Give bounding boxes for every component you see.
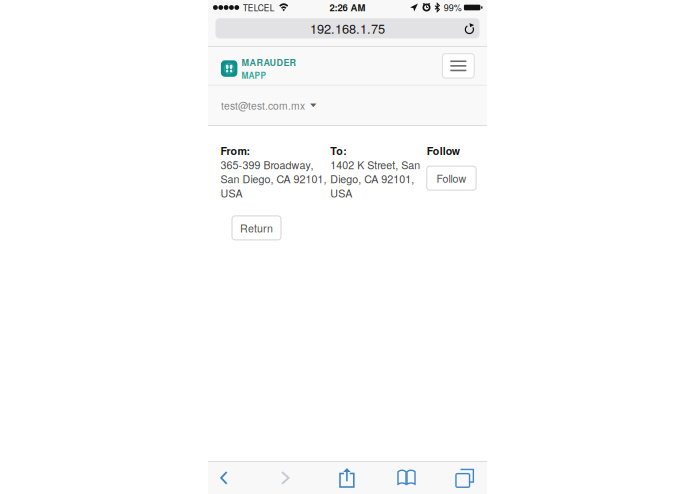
staticText: 99% <box>444 1 462 14</box>
staticText: San Diego, CA 92101, <box>220 171 326 186</box>
button[interactable]: Tabs <box>449 462 482 494</box>
staticText: 2:26 AM <box>329 1 365 14</box>
button[interactable]: Menu <box>442 54 474 78</box>
button[interactable]: Reload <box>459 18 479 38</box>
staticText: USA <box>220 185 242 200</box>
staticText: 365-399 Broadway, <box>220 157 313 172</box>
staticText: Return <box>240 220 273 236</box>
staticText: Follow <box>436 170 466 186</box>
staticText: Diego, CA 92101, <box>330 171 414 186</box>
button[interactable]: Return <box>232 216 281 240</box>
button[interactable]: Share <box>330 462 363 494</box>
staticText: Follow <box>427 143 460 158</box>
staticText: To: <box>330 143 347 158</box>
staticText: 192.168.1.75 <box>310 19 385 37</box>
button[interactable]: Follow <box>427 166 476 190</box>
staticText: TELCEL <box>243 1 275 13</box>
button[interactable]: test@test.com.mx <box>221 98 316 113</box>
staticText: MARAUDER <box>242 56 297 69</box>
staticText: MAPP <box>242 70 267 81</box>
button[interactable]: Forward <box>269 462 302 494</box>
staticText: test@test.com.mx <box>221 98 305 113</box>
button[interactable]: MARAUDER <box>221 50 297 81</box>
button[interactable]: Bookmarks <box>390 462 423 494</box>
button[interactable]: Back <box>207 462 240 494</box>
staticText: From: <box>220 143 250 158</box>
staticText: 1402 K Street, San <box>330 157 420 172</box>
staticText: USA <box>330 185 352 200</box>
